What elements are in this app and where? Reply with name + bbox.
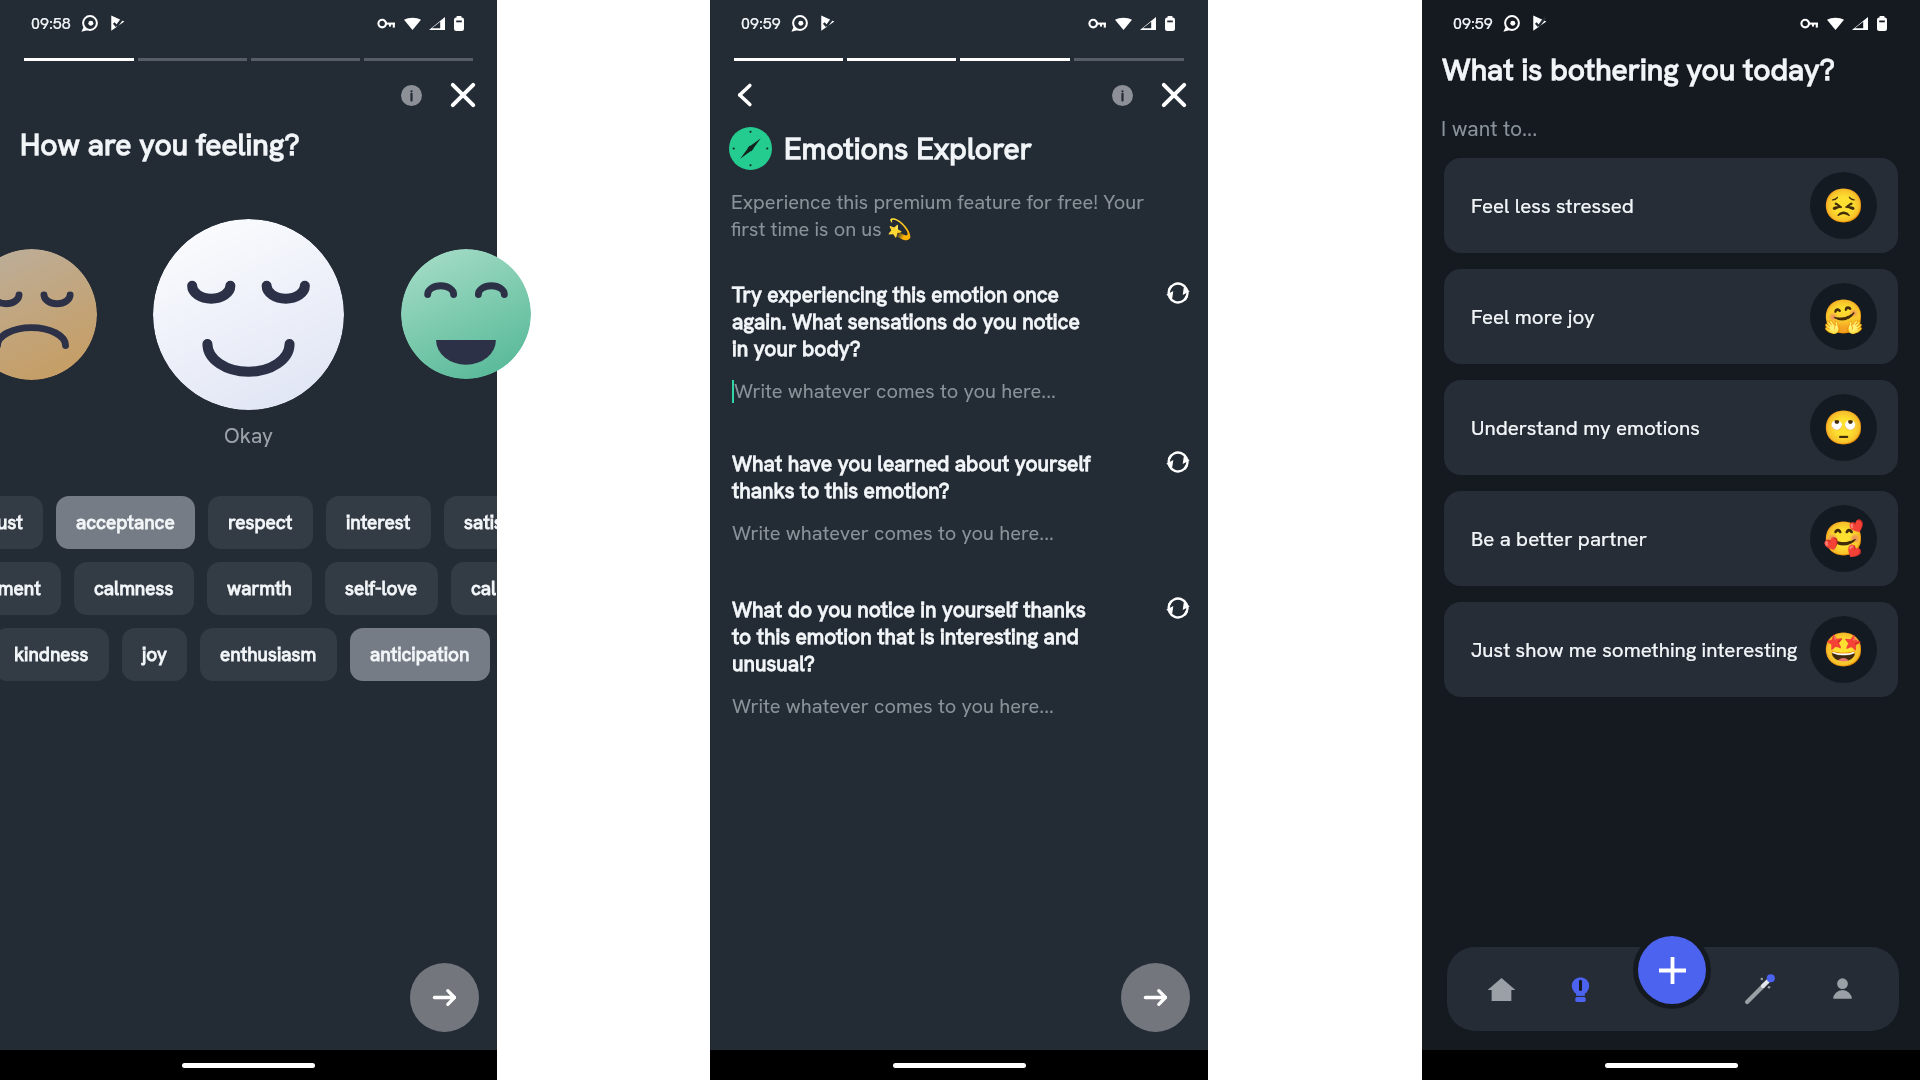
staticText: anticipation — [370, 642, 470, 667]
staticText: interest — [346, 510, 411, 535]
button[interactable]: Write whatever comes to you here... — [732, 378, 1190, 404]
staticText: 09:58 — [31, 13, 71, 34]
staticText: What have you learned about yourself tha… — [732, 450, 1092, 504]
button[interactable]: Refresh question — [1166, 281, 1190, 305]
button[interactable]: respect — [208, 496, 313, 549]
button[interactable]: Information — [1103, 76, 1141, 114]
staticText: calm — [471, 576, 497, 601]
button[interactable]: Great mood — [401, 249, 531, 379]
button[interactable]: Just show me something interesting — [1444, 602, 1898, 697]
button[interactable]: interest — [326, 496, 431, 549]
staticText: Experience this premium feature for free… — [731, 189, 1171, 242]
staticText: Feel more joy — [1471, 303, 1810, 330]
staticText: self-love — [345, 576, 418, 601]
staticText: kindness — [14, 642, 89, 667]
staticText: warmth — [227, 576, 292, 601]
button[interactable]: ust — [0, 496, 43, 549]
button[interactable]: Refresh question — [1166, 450, 1190, 474]
staticText: Write whatever comes to you here... — [732, 520, 1054, 546]
button[interactable]: Be a better partner — [1444, 491, 1898, 586]
button[interactable]: enthusiasm — [200, 628, 337, 681]
button[interactable]: Add — [1638, 936, 1706, 1004]
staticText: What do you notice in yourself thanks to… — [732, 596, 1092, 677]
staticText: Understand my emotions — [1471, 414, 1810, 441]
button[interactable]: joy — [122, 628, 187, 681]
staticText: I want to... — [1441, 115, 1538, 142]
button[interactable]: self-love — [325, 562, 438, 615]
button[interactable]: Write whatever comes to you here... — [732, 520, 1190, 546]
button[interactable]: Refresh question — [1166, 596, 1190, 620]
button[interactable]: Profile — [1806, 947, 1878, 1031]
staticText: acceptance — [76, 510, 175, 535]
staticText: 🥰 — [1823, 519, 1865, 558]
staticText: Feel less stressed — [1471, 192, 1810, 219]
button[interactable]: Insights — [1544, 947, 1616, 1031]
button[interactable]: anticipation — [350, 628, 490, 681]
button[interactable]: ssment — [0, 562, 61, 615]
button[interactable]: Back — [724, 74, 766, 116]
staticText: How are you feeling? — [20, 125, 300, 164]
staticText: What is bothering you today? — [1442, 50, 1836, 89]
staticText: satisfaction — [464, 510, 497, 535]
button[interactable]: Information — [392, 76, 430, 114]
staticText: Be a better partner — [1471, 525, 1810, 552]
button[interactable]: Next — [410, 963, 479, 1032]
staticText: Try experiencing this emotion once again… — [732, 281, 1092, 362]
button[interactable]: Feel less stressed — [1444, 158, 1898, 253]
button[interactable]: Okay mood — [153, 219, 344, 410]
staticText: 🤩 — [1823, 630, 1865, 669]
button[interactable]: Close — [442, 74, 484, 116]
button[interactable]: Feel more joy — [1444, 269, 1898, 364]
staticText: calmness — [94, 576, 174, 601]
staticText: respect — [228, 510, 293, 535]
button[interactable]: warmth — [207, 562, 312, 615]
staticText: joy — [142, 642, 167, 667]
staticText: Emotions Explorer — [784, 129, 1032, 168]
button[interactable]: Home — [1465, 947, 1537, 1031]
button[interactable]: kindness — [0, 628, 109, 681]
staticText: 😣 — [1823, 186, 1865, 225]
staticText: Just show me something interesting — [1471, 636, 1810, 663]
button[interactable]: Understand my emotions — [1444, 380, 1898, 475]
staticText: 🤗 — [1823, 297, 1865, 336]
staticText: 🙄 — [1823, 408, 1865, 447]
staticText: enthusiasm — [220, 642, 317, 667]
button[interactable]: acceptance — [56, 496, 195, 549]
staticText: Write whatever comes to you here... — [732, 693, 1054, 719]
staticText: Okay — [0, 422, 497, 449]
staticText: 09:59 — [1453, 13, 1493, 34]
button[interactable]: Write whatever comes to you here... — [732, 693, 1190, 719]
button[interactable]: calm — [451, 562, 497, 615]
staticText: Write whatever comes to you here... — [734, 378, 1056, 404]
button[interactable]: Close — [1153, 74, 1195, 116]
button[interactable]: Magic — [1724, 947, 1796, 1031]
staticText: ust — [0, 510, 23, 535]
button[interactable]: satisfaction — [444, 496, 497, 549]
button[interactable]: Bad mood — [0, 249, 97, 380]
button[interactable]: Next — [1121, 963, 1190, 1032]
staticText: ssment — [0, 576, 41, 601]
staticText: 09:59 — [741, 13, 781, 34]
button[interactable]: calmness — [74, 562, 194, 615]
